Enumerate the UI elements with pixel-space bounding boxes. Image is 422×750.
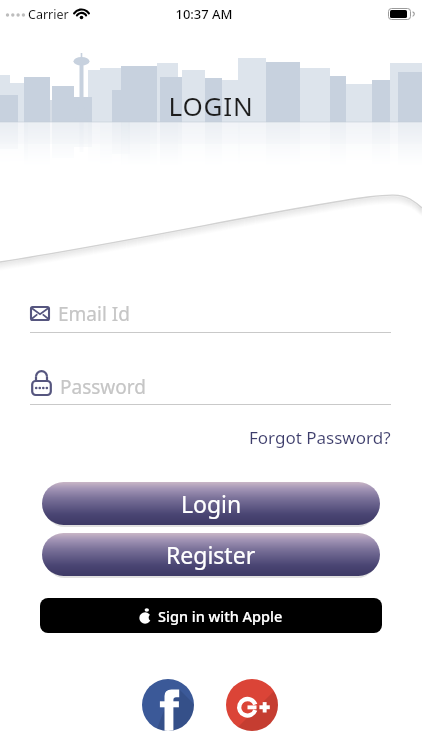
staticText: Carrier xyxy=(28,6,69,23)
button[interactable]: Register xyxy=(42,533,380,576)
staticText: LOGIN xyxy=(0,88,422,123)
button[interactable]: Login xyxy=(42,482,380,525)
staticText: Email Id xyxy=(58,301,130,327)
button[interactable]: Sign in with Apple xyxy=(40,598,382,633)
staticText: Login xyxy=(181,488,242,519)
button[interactable] xyxy=(142,679,194,731)
staticText: Register xyxy=(166,539,256,570)
staticText: Password xyxy=(60,374,146,400)
staticText: Sign in with Apple xyxy=(158,606,283,626)
button[interactable]: Forgot Password? xyxy=(249,426,391,449)
button[interactable] xyxy=(226,679,278,731)
staticText: 10:37 AM xyxy=(0,5,415,23)
